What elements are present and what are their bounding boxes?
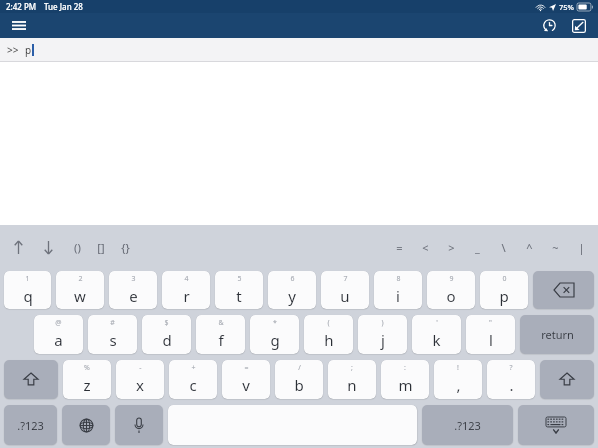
button[interactable]: > — [444, 235, 458, 259]
staticText: 9 — [449, 274, 454, 284]
staticText: () — [74, 240, 81, 255]
button[interactable]: >> — [0, 38, 598, 62]
button[interactable]: [] — [94, 235, 108, 259]
staticText: return — [541, 327, 574, 342]
button[interactable]: = — [222, 360, 270, 399]
staticText: ! — [457, 363, 459, 373]
button[interactable]: Backspace — [533, 271, 594, 309]
button[interactable]: Shift — [540, 360, 594, 399]
button[interactable]: Menu — [6, 13, 32, 38]
button[interactable]: 9 — [427, 271, 475, 309]
staticText: t — [236, 286, 242, 306]
button[interactable]: () — [70, 235, 84, 259]
staticText: h — [324, 330, 334, 350]
button[interactable]: 8 — [374, 271, 422, 309]
staticText: 7 — [343, 274, 348, 284]
button[interactable]: .?123 — [4, 405, 57, 445]
button[interactable]: ) — [358, 315, 407, 354]
staticText: & — [218, 318, 224, 328]
button[interactable]: = — [392, 235, 406, 259]
staticText: _ — [475, 240, 480, 255]
staticText: | — [578, 240, 585, 255]
button[interactable]: 7 — [321, 271, 369, 309]
button[interactable]: 0 — [480, 271, 528, 309]
staticText: - — [139, 363, 142, 373]
button[interactable]: Hide keyboard — [518, 405, 594, 445]
staticText: r — [183, 286, 190, 306]
button[interactable]: * — [250, 315, 299, 354]
button[interactable]: Shift — [4, 360, 58, 399]
staticText: @ — [55, 318, 62, 328]
staticText: o — [446, 286, 456, 306]
button[interactable]: @ — [34, 315, 83, 354]
staticText: b — [294, 375, 304, 395]
button[interactable]: \ — [496, 235, 510, 259]
button[interactable]: ~ — [548, 235, 562, 259]
button[interactable]: ! — [434, 360, 482, 399]
staticText: .?123 — [454, 418, 481, 433]
staticText: 0 — [502, 274, 507, 284]
button[interactable]: Dictate — [115, 405, 163, 445]
staticText: p — [499, 286, 509, 306]
staticText: 1 — [25, 274, 30, 284]
button[interactable]: ( — [304, 315, 353, 354]
button[interactable]: ' — [412, 315, 461, 354]
button[interactable]: < — [418, 235, 432, 259]
staticText: q — [23, 286, 33, 306]
staticText: z — [83, 375, 91, 395]
button[interactable]: Up — [10, 235, 26, 259]
staticText: * — [273, 318, 277, 328]
staticText: >> — [7, 43, 19, 57]
staticText: v — [242, 375, 250, 395]
staticText: ' — [436, 318, 438, 328]
staticText: . — [509, 375, 514, 395]
staticText: 8 — [396, 274, 401, 284]
button[interactable]: {} — [118, 235, 132, 259]
button[interactable]: / — [275, 360, 323, 399]
button[interactable]: + — [169, 360, 217, 399]
button[interactable]: 2 — [56, 271, 104, 309]
button[interactable]: ? — [487, 360, 535, 399]
staticText: + — [191, 363, 196, 373]
button[interactable]: History — [536, 13, 562, 38]
staticText: % — [84, 363, 90, 373]
staticText: ) — [381, 318, 384, 328]
staticText: 3 — [131, 274, 136, 284]
staticText: {} — [121, 240, 130, 255]
button[interactable]: $ — [142, 315, 191, 354]
button[interactable]: 3 — [109, 271, 157, 309]
button[interactable]: 6 — [268, 271, 316, 309]
staticText: .?123 — [17, 418, 44, 433]
button[interactable]: " — [466, 315, 515, 354]
button[interactable]: Change keyboard — [62, 405, 110, 445]
button[interactable]: ; — [328, 360, 376, 399]
staticText: 4 — [184, 274, 189, 284]
button[interactable]: 1 — [4, 271, 51, 309]
button[interactable]: return — [520, 315, 594, 354]
button[interactable]: .?123 — [422, 405, 513, 445]
button[interactable]: 5 — [215, 271, 263, 309]
staticText: n — [347, 375, 357, 395]
button[interactable]: % — [63, 360, 111, 399]
button[interactable]: : — [381, 360, 429, 399]
staticText: / — [298, 363, 301, 373]
staticText: g — [270, 330, 280, 350]
staticText: 5 — [237, 274, 242, 284]
button[interactable]: & — [196, 315, 245, 354]
staticText: = — [244, 363, 249, 373]
button[interactable]: 4 — [162, 271, 210, 309]
button[interactable]: ^ — [522, 235, 536, 259]
button[interactable]: Restore window — [566, 13, 592, 38]
staticText: $ — [164, 318, 169, 328]
staticText: ^ — [526, 240, 533, 255]
button[interactable]: - — [116, 360, 164, 399]
staticText: = — [396, 240, 403, 255]
staticText: j — [381, 330, 385, 350]
button[interactable]: | — [574, 235, 588, 259]
button[interactable]: _ — [470, 235, 484, 259]
button[interactable]: Down — [40, 235, 56, 259]
staticText: f — [218, 330, 224, 350]
staticText: # — [110, 318, 115, 328]
button[interactable]: # — [88, 315, 137, 354]
